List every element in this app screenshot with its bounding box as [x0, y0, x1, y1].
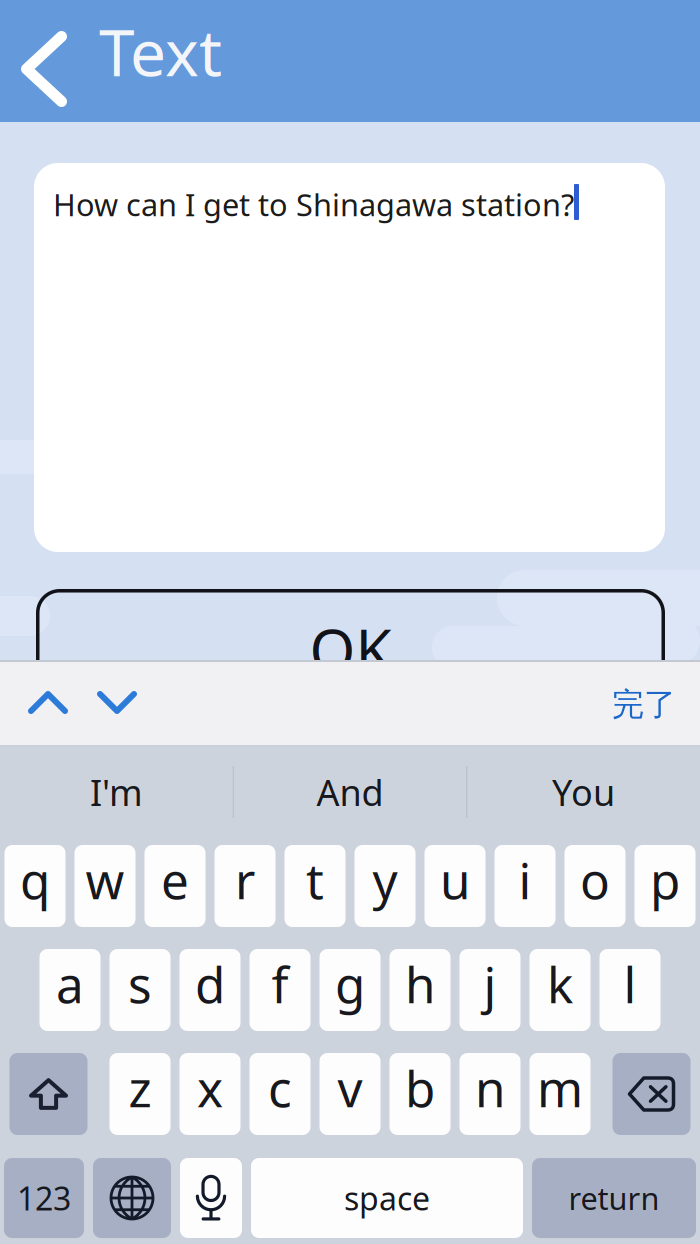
- staticText: b: [405, 1055, 435, 1121]
- button[interactable]: Previous field: [0, 660, 70, 745]
- button[interactable]: a: [39, 949, 100, 1031]
- staticText: k: [547, 951, 573, 1017]
- button[interactable]: o: [564, 845, 625, 927]
- staticText: 123: [17, 1177, 71, 1219]
- staticText: y: [372, 847, 397, 913]
- staticText: h: [405, 951, 435, 1017]
- staticText: OK: [309, 610, 391, 688]
- button[interactable]: z: [109, 1053, 170, 1135]
- button[interactable]: Shift: [9, 1053, 87, 1135]
- staticText: j: [483, 951, 496, 1017]
- button[interactable]: l: [599, 949, 660, 1031]
- button[interactable]: x: [179, 1053, 240, 1135]
- staticText: w: [85, 847, 124, 913]
- button[interactable]: Next field: [0, 660, 70, 745]
- button[interactable]: v: [319, 1053, 380, 1135]
- button[interactable]: m: [529, 1053, 590, 1135]
- button[interactable]: w: [74, 845, 135, 927]
- staticText: m: [537, 1055, 583, 1121]
- staticText: f: [271, 951, 288, 1017]
- staticText: 完了: [612, 685, 676, 724]
- button[interactable]: r: [214, 845, 275, 927]
- staticText: You: [552, 768, 615, 816]
- button[interactable]: f: [249, 949, 310, 1031]
- staticText: n: [475, 1055, 505, 1121]
- staticText: p: [650, 847, 680, 913]
- button[interactable]: I'm: [0, 745, 233, 839]
- button[interactable]: And: [234, 745, 466, 839]
- staticText: Text: [99, 9, 222, 94]
- button[interactable]: Dictation: [180, 1158, 242, 1238]
- button[interactable]: u: [424, 845, 485, 927]
- button[interactable]: i: [494, 845, 555, 927]
- staticText: How can I get to Shinagawa station?: [53, 184, 574, 225]
- button[interactable]: j: [459, 949, 520, 1031]
- staticText: q: [20, 847, 50, 913]
- staticText: i: [518, 847, 531, 913]
- button[interactable]: 123: [4, 1158, 84, 1238]
- button[interactable]: OK: [36, 589, 665, 709]
- staticText: return: [568, 1178, 659, 1218]
- button[interactable]: y: [354, 845, 415, 927]
- button[interactable]: 完了: [0, 660, 96, 745]
- button[interactable]: space: [251, 1158, 523, 1238]
- button[interactable]: Delete: [612, 1053, 690, 1135]
- button[interactable]: s: [109, 949, 170, 1031]
- staticText: s: [128, 951, 152, 1017]
- staticText: u: [440, 847, 470, 913]
- staticText: v: [337, 1055, 362, 1121]
- button[interactable]: return: [532, 1158, 696, 1238]
- button[interactable]: h: [389, 949, 450, 1031]
- button[interactable]: k: [529, 949, 590, 1031]
- staticText: space: [344, 1177, 430, 1219]
- button[interactable]: c: [249, 1053, 310, 1135]
- staticText: a: [56, 951, 84, 1017]
- button[interactable]: p: [634, 845, 695, 927]
- staticText: g: [335, 951, 365, 1017]
- staticText: I'm: [90, 768, 143, 816]
- staticText: r: [235, 847, 255, 913]
- staticText: And: [316, 768, 383, 816]
- staticText: o: [580, 847, 610, 913]
- button[interactable]: d: [179, 949, 240, 1031]
- staticText: d: [195, 951, 225, 1017]
- button[interactable]: n: [459, 1053, 520, 1135]
- staticText: x: [197, 1055, 223, 1121]
- button[interactable]: t: [284, 845, 345, 927]
- button[interactable]: b: [389, 1053, 450, 1135]
- button[interactable]: g: [319, 949, 380, 1031]
- button[interactable]: Back: [0, 0, 46, 76]
- staticText: e: [161, 847, 189, 913]
- button[interactable]: You: [467, 745, 700, 839]
- button[interactable]: e: [144, 845, 205, 927]
- button[interactable]: Next keyboard: [93, 1158, 171, 1238]
- staticText: c: [268, 1055, 292, 1121]
- staticText: t: [306, 847, 324, 913]
- staticText: l: [623, 951, 636, 1017]
- button[interactable]: q: [4, 845, 65, 927]
- staticText: z: [128, 1055, 151, 1121]
